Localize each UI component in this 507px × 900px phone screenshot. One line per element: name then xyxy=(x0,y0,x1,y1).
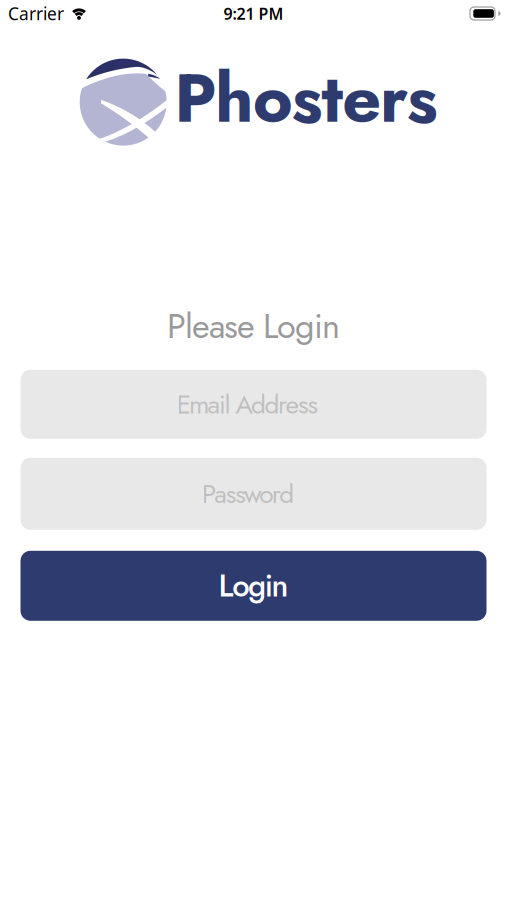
staticText: Password xyxy=(202,475,294,513)
button[interactable]: Email Address xyxy=(20,370,486,439)
staticText: Phosters xyxy=(174,49,438,147)
staticText: Please Login xyxy=(167,301,340,351)
button[interactable]: Password xyxy=(20,458,486,530)
button[interactable]: Login xyxy=(20,551,486,621)
staticText: 9:21 PM xyxy=(223,3,283,24)
staticText: Carrier xyxy=(8,2,64,25)
staticText: Login xyxy=(218,563,289,608)
staticText: Email Address xyxy=(176,385,318,423)
